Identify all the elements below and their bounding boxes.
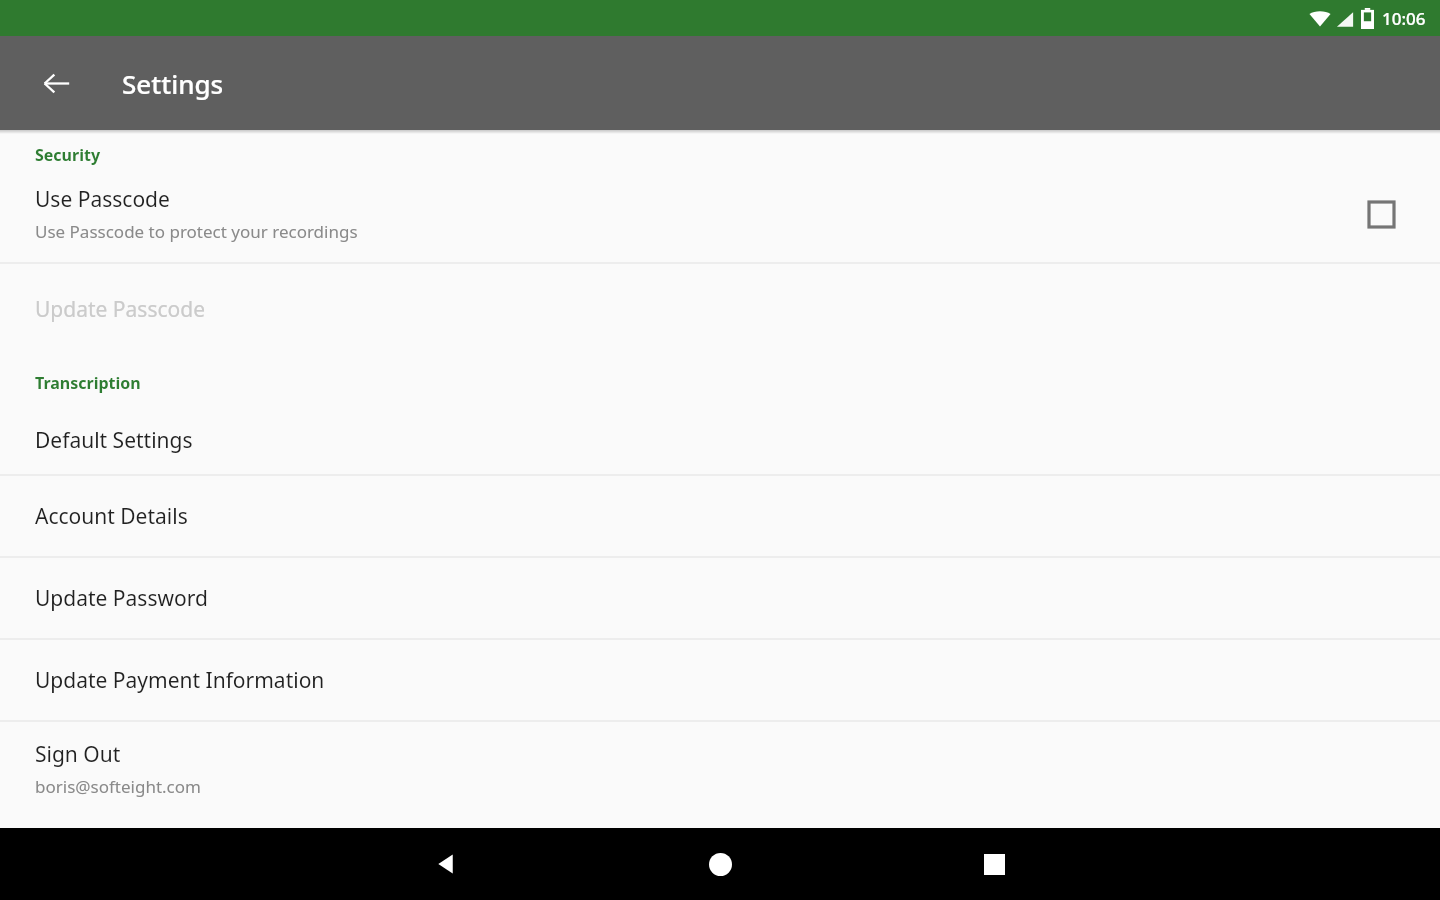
staticText: Use Passcode [35,185,170,214]
button[interactable]: Update Passcode [0,264,1440,354]
button[interactable]: Account Details [0,476,1440,556]
button[interactable]: Back [28,55,84,111]
staticText: Update Payment Information [35,666,325,695]
button[interactable]: Sign Out [0,722,1440,815]
staticText: Update Password [35,584,208,613]
button[interactable]: Default Settings [0,406,1440,474]
staticText: Transcription [35,372,141,394]
staticText: Security [35,144,101,166]
staticText: Update Passcode [35,295,205,324]
staticText: Sign Out [35,740,121,769]
staticText: Account Details [35,502,188,531]
staticText: Settings [122,66,224,101]
button[interactable]: Recent apps [962,832,1026,896]
staticText: Default Settings [35,426,193,455]
button[interactable]: Update Payment Information [0,640,1440,720]
staticText: boris@softeight.com [35,775,201,798]
staticText: 10:06 [1382,7,1426,30]
button[interactable]: Back [414,832,478,896]
staticText: Use Passcode to protect your recordings [35,220,358,243]
button[interactable]: Update Password [0,558,1440,638]
button[interactable]: Use Passcode [0,166,1440,262]
button[interactable]: Home [688,832,752,896]
